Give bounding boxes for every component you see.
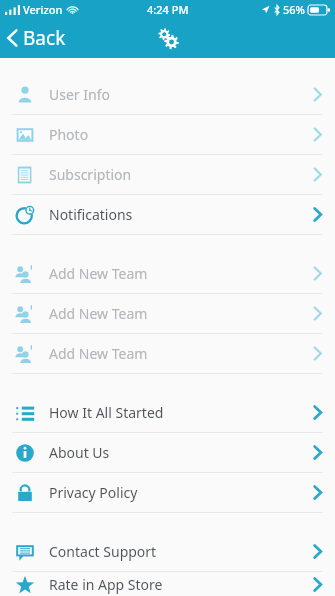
staticText: 4:24 PM <box>147 2 189 17</box>
staticText: Photo <box>49 125 313 144</box>
button[interactable]: Settings <box>149 19 187 57</box>
staticText: Rate in App Store <box>49 575 313 594</box>
button[interactable]: Add New Team <box>0 254 335 293</box>
staticText: Privacy Policy <box>49 483 313 502</box>
button[interactable]: Back <box>0 21 76 55</box>
staticText: User Info <box>49 85 313 104</box>
button[interactable]: Contact Support <box>0 532 335 571</box>
staticText: Notifications <box>49 205 313 224</box>
staticText: How It All Started <box>49 403 313 422</box>
staticText: Add New Team <box>49 264 313 283</box>
button[interactable]: Rate in App Store <box>0 572 335 596</box>
button[interactable]: How It All Started <box>0 393 335 432</box>
staticText: Subscription <box>49 165 313 184</box>
button[interactable]: About Us <box>0 433 335 472</box>
staticText: Back <box>23 25 66 51</box>
staticText: Add New Team <box>49 344 313 363</box>
button[interactable]: User Info <box>0 75 335 114</box>
button[interactable]: Subscription <box>0 155 335 194</box>
staticText: Contact Support <box>49 542 313 561</box>
staticText: Add New Team <box>49 304 313 323</box>
button[interactable]: Photo <box>0 115 335 154</box>
button[interactable]: Privacy Policy <box>0 473 335 512</box>
staticText: 56% <box>283 2 305 17</box>
button[interactable]: Notifications <box>0 195 335 234</box>
staticText: Verizon <box>23 2 63 17</box>
staticText: About Us <box>49 443 313 462</box>
button[interactable]: Add New Team <box>0 334 335 373</box>
button[interactable]: Add New Team <box>0 294 335 333</box>
